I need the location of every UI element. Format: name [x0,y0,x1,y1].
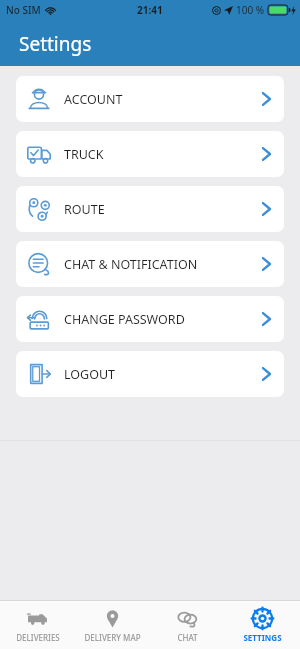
staticText: SETTINGS [243,632,282,643]
staticText: CHAT [177,632,198,643]
button[interactable]: CHANGE PASSWORD [16,296,284,342]
staticText: CHAT & NOTIFICATION [64,256,198,273]
staticText: DELIVERY MAP [84,632,141,643]
staticText: 21:41 [137,3,163,17]
staticText: CHANGE PASSWORD [64,311,185,328]
button[interactable]: LOGOUT [16,351,284,397]
staticText: ACCOUNT [64,91,123,108]
button[interactable]: ACCOUNT [16,76,284,122]
button[interactable]: DELIVERY MAP [75,601,150,649]
button[interactable]: SETTINGS [225,601,300,649]
staticText: Settings [19,31,92,57]
staticText: 100 % [236,3,265,17]
staticText: LOGOUT [64,366,116,383]
staticText: ROUTE [64,201,105,218]
button[interactable]: DELIVERIES [0,601,75,649]
staticText: DELIVERIES [16,632,60,643]
staticText: TRUCK [64,146,104,163]
button[interactable]: CHAT [150,601,225,649]
button[interactable]: TRUCK [16,131,284,177]
button[interactable]: CHAT & NOTIFICATION [16,241,284,287]
staticText: No SIM [6,3,41,17]
button[interactable]: ROUTE [16,186,284,232]
